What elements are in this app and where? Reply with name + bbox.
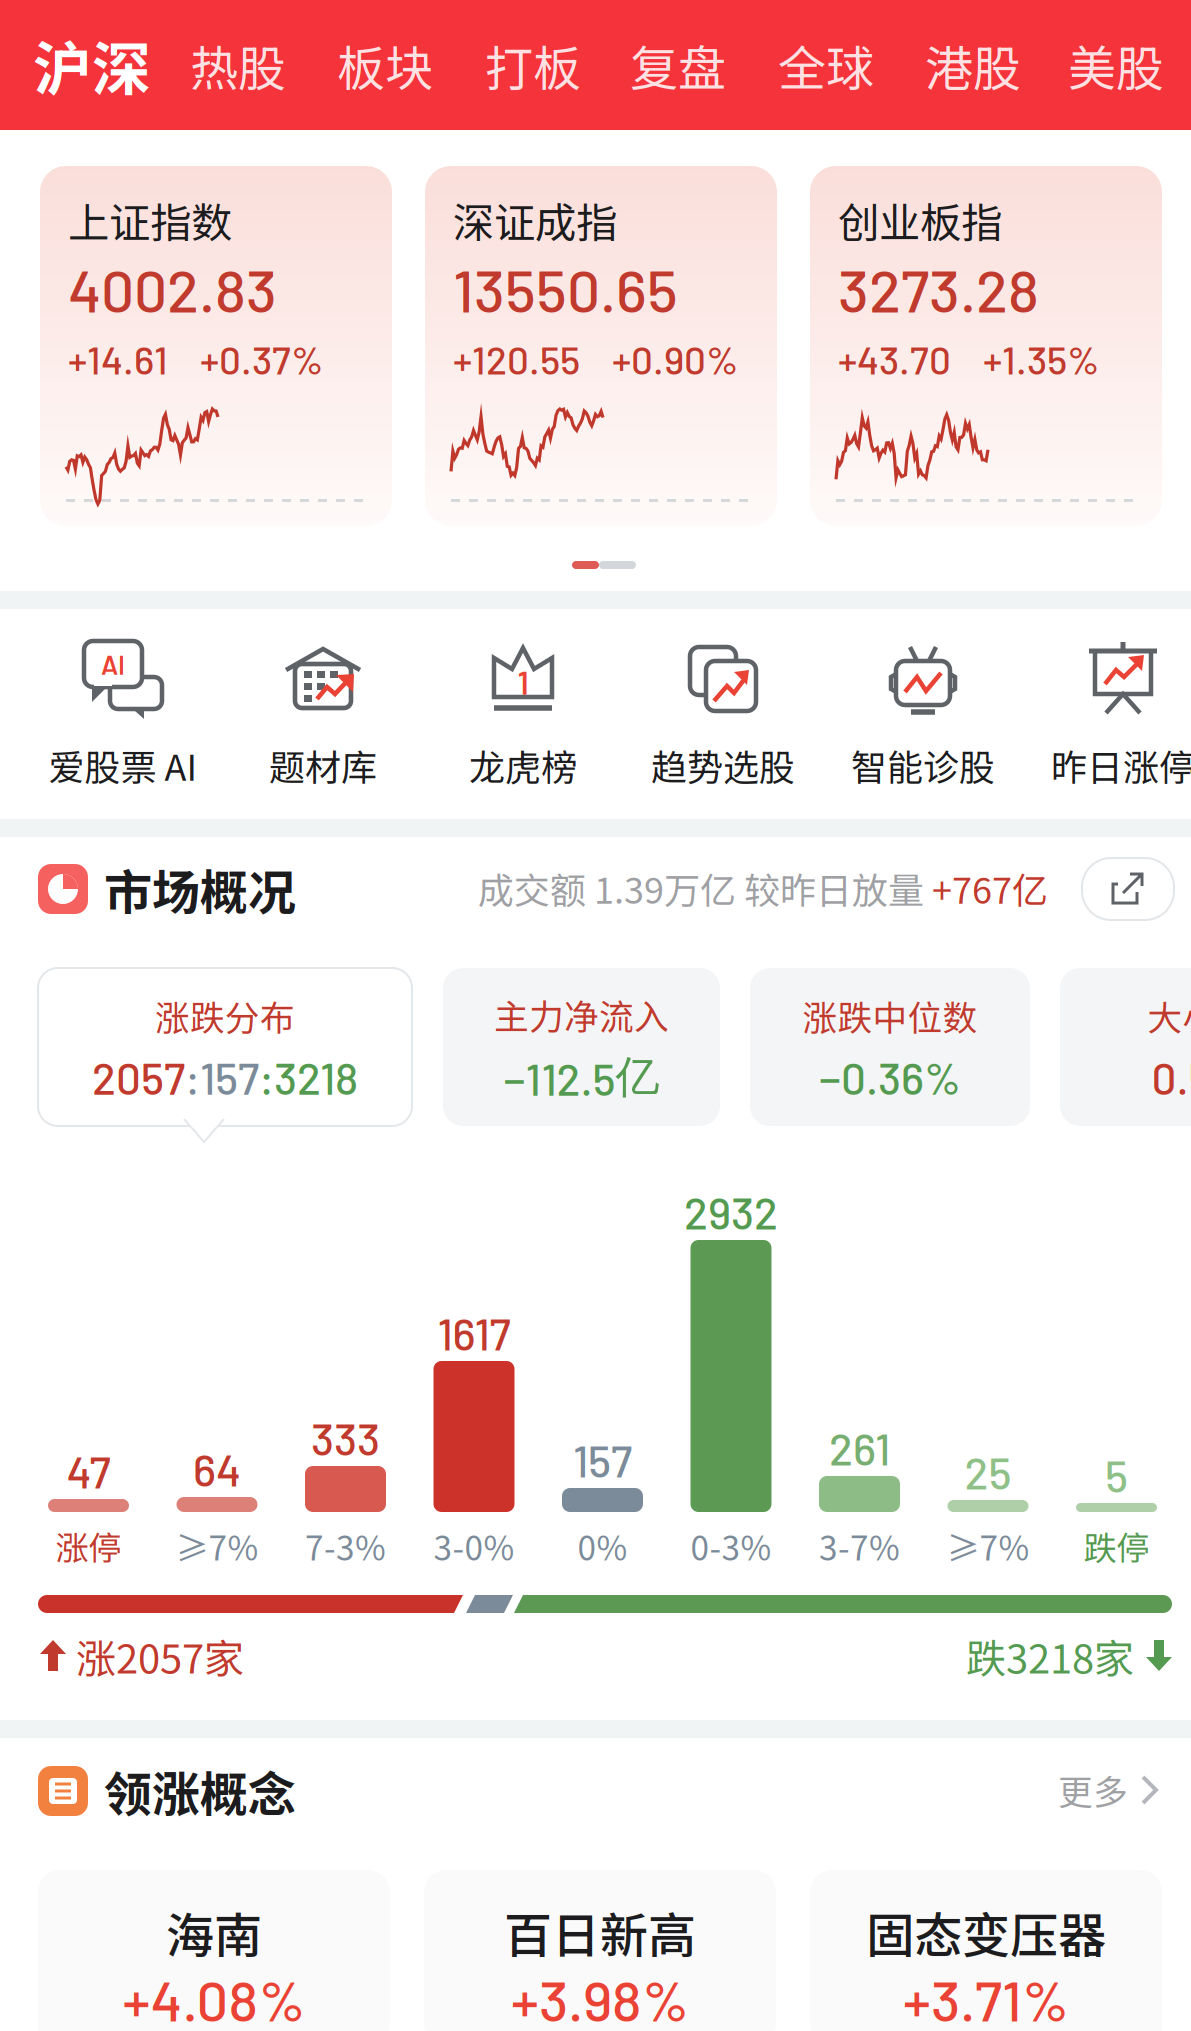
button[interactable]: 板块 [337, 0, 457, 130]
staticText: 1617 [437, 1307, 510, 1359]
staticText: +120.55 +0.90% [453, 336, 738, 382]
button[interactable]: 海南 [38, 1870, 390, 2031]
staticText: 成交额 1.39万亿 [478, 862, 744, 914]
staticText: 1 [517, 663, 528, 701]
staticText: 复盘 [630, 30, 726, 100]
staticText: 0.5% [1151, 1051, 1191, 1103]
staticText: −112.5亿 [503, 1049, 659, 1105]
staticText: +43.70 +1.35% [838, 336, 1099, 382]
staticText: 7-3% [305, 1522, 386, 1570]
button[interactable]: 趋势选股 [623, 609, 823, 809]
button[interactable]: 1 [423, 609, 623, 809]
button[interactable]: 智能诊股 [823, 609, 1023, 809]
staticText: 261 [829, 1422, 890, 1474]
staticText: +4.08% [122, 1965, 305, 2031]
staticText: 3-0% [433, 1522, 514, 1570]
staticText: 打板 [485, 30, 581, 100]
staticText: : [185, 1051, 200, 1103]
staticText: 固态变压器 [866, 1897, 1106, 1967]
staticText: 3273.28 [838, 254, 1039, 324]
staticText: 沪深 [33, 22, 151, 107]
staticText: 涨跌分布 [155, 990, 295, 1041]
staticText: 海南 [166, 1897, 262, 1967]
staticText: 创业板指 [838, 190, 1002, 250]
staticText: 龙虎榜 [469, 739, 577, 791]
staticText: −0.36% [819, 1051, 961, 1103]
staticText: 25 [964, 1446, 1011, 1498]
button[interactable]: 昨日涨停 [1023, 609, 1191, 809]
staticText: 爱股票 AI [48, 739, 197, 791]
button[interactable]: 主力净流入 [443, 968, 720, 1126]
button[interactable]: 固态变压器 [810, 1870, 1162, 2031]
staticText: 较昨日放量 [744, 862, 932, 914]
staticText: 跌停 [1083, 1522, 1149, 1570]
button[interactable]: 涨跌分布 [38, 968, 412, 1126]
staticText: 5 [1105, 1449, 1128, 1501]
staticText: 涨停 [55, 1522, 121, 1570]
staticText: +767亿 [932, 862, 1048, 914]
staticText: 涨跌中位数 [802, 990, 977, 1041]
staticText: 3-7% [819, 1522, 900, 1570]
staticText: 157 [573, 1434, 632, 1486]
staticText: 百日新高 [504, 1897, 696, 1967]
button[interactable]: 题材库 [223, 609, 423, 809]
staticText: 上证指数 [68, 190, 232, 250]
staticText: 深证成指 [453, 190, 617, 250]
staticText: 3218 [274, 1051, 358, 1103]
staticText: 智能诊股 [851, 739, 995, 791]
button[interactable]: 全球 [778, 0, 898, 130]
staticText: +3.98% [511, 1965, 689, 2031]
staticText: 64 [193, 1443, 241, 1495]
staticText: 2932 [684, 1186, 778, 1238]
button[interactable]: 大小盘 [1060, 968, 1191, 1126]
staticText: 2057 [92, 1051, 185, 1103]
button[interactable]: 美股 [1068, 0, 1188, 130]
staticText: : [259, 1051, 274, 1103]
staticText: 0-3% [690, 1522, 771, 1570]
staticText: 美股 [1068, 30, 1164, 100]
staticText: 更多 [1058, 1765, 1128, 1815]
staticText: 趋势选股 [651, 739, 795, 791]
staticText: +14.61 +0.37% [68, 336, 323, 382]
staticText: 大小盘 [1147, 990, 1191, 1041]
staticText: 全球 [778, 30, 874, 100]
staticText: 市场概况 [104, 854, 296, 924]
button[interactable]: 热股 [190, 0, 310, 130]
staticText: 题材库 [269, 739, 377, 791]
staticText: 昨日涨停 [1051, 739, 1191, 791]
button[interactable]: 沪深 [33, 0, 173, 130]
button[interactable]: 港股 [925, 0, 1045, 130]
staticText: ≥7% [946, 1522, 1029, 1570]
staticText: 13550.65 [453, 254, 678, 324]
staticText: 领涨概念 [104, 1756, 296, 1826]
button[interactable]: 复盘 [630, 0, 750, 130]
staticText: 333 [311, 1412, 380, 1464]
button[interactable]: 涨跌中位数 [750, 968, 1030, 1126]
button[interactable]: 更多 [980, 1762, 1160, 1818]
staticText: 主力净流入 [494, 989, 669, 1039]
staticText: 157 [200, 1051, 259, 1103]
staticText: 4002.83 [68, 254, 277, 324]
staticText: 0% [577, 1522, 627, 1570]
staticText: 港股 [925, 30, 1021, 100]
staticText: 47 [66, 1445, 110, 1497]
button[interactable]: 百日新高 [424, 1870, 776, 2031]
staticText: ≥7% [175, 1522, 258, 1570]
button[interactable]: 打板 [485, 0, 605, 130]
staticText: AI [101, 648, 125, 680]
button[interactable]: 分享 [1082, 858, 1174, 920]
staticText: 板块 [337, 30, 433, 100]
button[interactable]: AI [23, 609, 223, 809]
staticText: 跌3218家 [966, 1627, 1134, 1685]
staticText: 涨2057家 [76, 1627, 244, 1685]
staticText: +3.71% [903, 1965, 1069, 2031]
staticText: 热股 [190, 30, 286, 100]
